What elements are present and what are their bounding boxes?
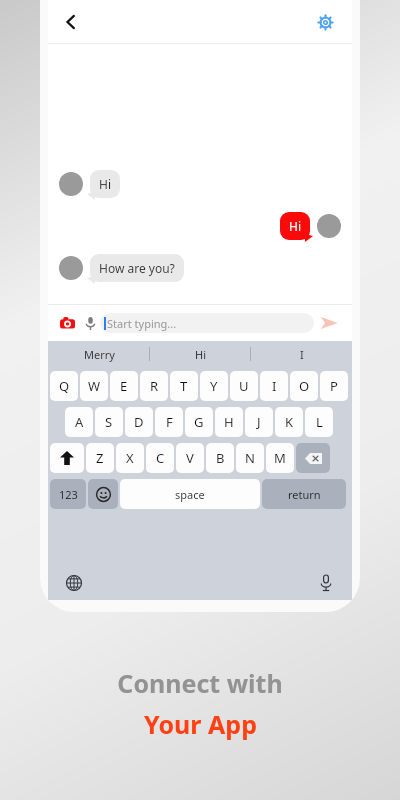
button[interactable]: A [65,407,93,437]
button[interactable]: R [140,371,168,401]
button[interactable]: Z [86,443,114,473]
button[interactable]: Merry [48,341,150,367]
button[interactable]: N [236,443,264,473]
staticText: Y [210,377,218,395]
button[interactable]: M [266,443,294,473]
staticText: P [330,377,338,395]
button[interactable]: return [262,479,346,509]
button[interactable]: J [245,407,273,437]
staticText: space [175,487,205,502]
staticText: Connect with [117,666,283,700]
staticText: F [166,413,173,431]
staticText: Start typing... [107,316,177,331]
staticText: Hi [195,347,206,362]
button[interactable]: V [176,443,204,473]
button[interactable] [50,443,84,473]
staticText: J [257,413,261,431]
button[interactable]: Dictate [314,571,338,595]
button[interactable]: C [146,443,174,473]
staticText: B [216,449,225,467]
button[interactable]: P [320,371,348,401]
staticText: O [299,377,310,395]
staticText: R [150,377,159,395]
button[interactable]: space [120,479,260,509]
staticText: return [288,487,321,502]
staticText: Your App [144,707,257,741]
button[interactable]: E [110,371,138,401]
staticText: X [126,449,134,467]
button[interactable] [88,479,118,509]
staticText: K [285,413,294,431]
button[interactable]: K [275,407,303,437]
staticText: D [134,413,144,431]
staticText: V [186,449,194,467]
button[interactable]: Voice input [80,313,100,333]
button[interactable]: D [125,407,153,437]
button[interactable]: Back [54,5,88,39]
button[interactable]: I [251,341,352,367]
button[interactable]: Start typing... [100,313,314,333]
staticText: G [194,413,204,431]
staticText: Z [96,449,104,467]
staticText: M [274,449,286,467]
button[interactable]: B [206,443,234,473]
button[interactable]: S [95,407,123,437]
staticText: T [180,377,188,395]
button[interactable]: Change language [62,571,86,595]
staticText: 123 [59,487,78,502]
staticText: W [88,377,101,395]
button[interactable]: I [260,371,288,401]
button[interactable]: L [305,407,333,437]
staticText: Q [59,377,70,395]
button[interactable]: O [290,371,318,401]
staticText: Merry [84,347,115,362]
button[interactable]: Hi [90,170,120,198]
button[interactable]: Hi [280,212,310,240]
button[interactable]: Hi [150,341,251,367]
staticText: I [300,347,304,362]
staticText: Hi [289,218,301,234]
staticText: H [224,413,234,431]
button[interactable]: Y [200,371,228,401]
button[interactable] [296,443,330,473]
button[interactable]: F [155,407,183,437]
staticText: C [156,449,165,467]
staticText: Hi [99,176,111,192]
button[interactable]: Q [50,371,78,401]
button[interactable]: H [215,407,243,437]
button[interactable]: Settings [310,7,340,37]
staticText: U [239,377,249,395]
button[interactable]: X [116,443,144,473]
button[interactable]: 123 [50,479,86,509]
staticText: E [120,377,128,395]
staticText: How are you? [99,260,175,276]
button[interactable]: W [80,371,108,401]
staticText: I [272,377,277,395]
button[interactable]: T [170,371,198,401]
button[interactable]: How are you? [90,254,184,282]
staticText: N [245,449,255,467]
staticText: S [105,413,113,431]
button[interactable]: G [185,407,213,437]
button[interactable]: Camera [56,312,78,334]
staticText: L [316,413,323,431]
staticText: A [75,413,84,431]
button[interactable]: Send [314,308,344,338]
button[interactable]: U [230,371,258,401]
